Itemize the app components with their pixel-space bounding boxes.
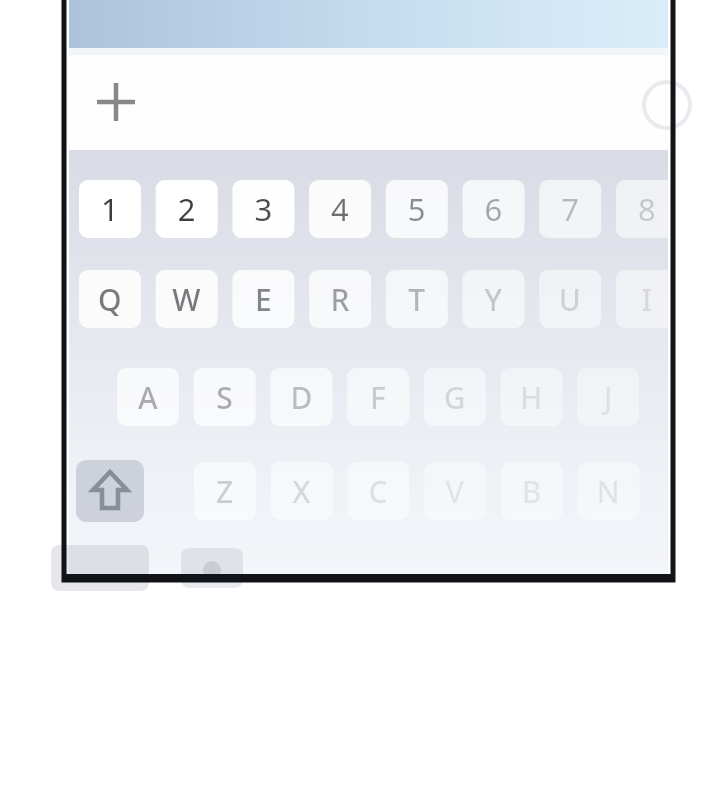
button[interactable]: Shift [76, 460, 144, 522]
button[interactable]: Add [92, 78, 140, 126]
